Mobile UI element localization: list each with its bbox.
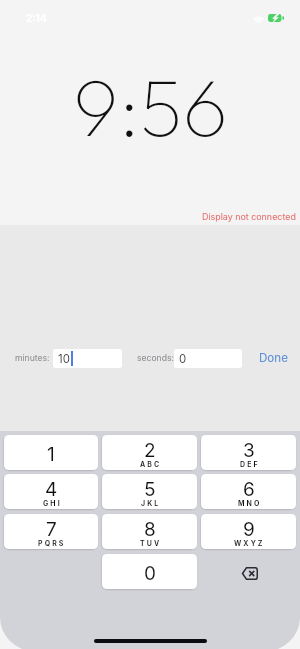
button[interactable]: 2 bbox=[102, 435, 197, 470]
button[interactable]: 0 bbox=[102, 554, 197, 589]
staticText: 1 bbox=[47, 443, 55, 466]
staticText: MNO bbox=[238, 499, 262, 507]
staticText: 4 bbox=[45, 478, 58, 501]
staticText: JKL bbox=[141, 499, 161, 507]
button[interactable]: 8 bbox=[102, 514, 197, 549]
staticText: minutes: bbox=[15, 353, 50, 363]
staticText: 3 bbox=[243, 439, 255, 462]
button[interactable]: 10 bbox=[53, 349, 122, 368]
button[interactable]: 3 bbox=[201, 435, 296, 470]
staticText: Done bbox=[259, 351, 288, 365]
staticText: Display not connected bbox=[202, 211, 296, 222]
button[interactable]: 0 bbox=[174, 349, 242, 368]
button[interactable]: 6 bbox=[201, 474, 296, 509]
staticText: 0 bbox=[179, 352, 187, 366]
button[interactable]: 9 bbox=[201, 514, 296, 549]
staticText: 6 bbox=[243, 478, 255, 501]
button[interactable]: Done bbox=[254, 348, 293, 368]
button[interactable]: 4 bbox=[4, 474, 98, 509]
staticText: 5 bbox=[144, 478, 156, 501]
button[interactable]: 7 bbox=[4, 514, 98, 549]
staticText: DEF bbox=[240, 460, 260, 468]
staticText: 10 bbox=[58, 352, 70, 366]
button[interactable]: Backspace bbox=[201, 554, 296, 589]
staticText: TUV bbox=[140, 539, 162, 547]
staticText: 8 bbox=[144, 518, 156, 541]
button[interactable]: 5 bbox=[102, 474, 197, 509]
staticText: 0 bbox=[144, 562, 156, 585]
staticText: 9:56 bbox=[73, 56, 228, 157]
staticText: PQRS bbox=[38, 539, 66, 547]
staticText: seconds: bbox=[137, 353, 174, 363]
staticText: GHI bbox=[43, 499, 62, 507]
staticText: 2 bbox=[144, 439, 156, 462]
staticText: WXYZ bbox=[234, 539, 265, 547]
staticText: 9 bbox=[243, 518, 255, 541]
staticText: 7 bbox=[46, 518, 57, 541]
staticText: 2:14 bbox=[26, 12, 47, 24]
button[interactable]: 1 bbox=[4, 435, 98, 470]
staticText: ABC bbox=[140, 460, 162, 468]
